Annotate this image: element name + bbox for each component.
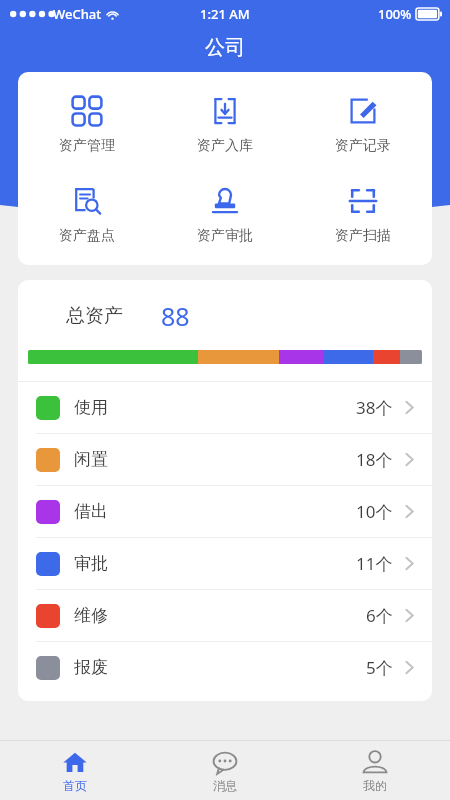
- staticText: 资产记录: [335, 137, 391, 155]
- staticText: 使用: [74, 397, 108, 418]
- button[interactable]: 借出: [18, 486, 432, 537]
- button[interactable]: 审批: [18, 538, 432, 589]
- button[interactable]: 资产审批: [156, 184, 294, 247]
- button[interactable]: 资产入库: [156, 94, 294, 157]
- staticText: 10个: [356, 500, 393, 523]
- staticText: 首页: [63, 778, 87, 793]
- staticText: WeChat: [53, 5, 102, 23]
- staticText: 资产扫描: [335, 227, 391, 245]
- button[interactable]: 我的: [300, 741, 450, 800]
- button[interactable]: 资产记录: [294, 94, 432, 157]
- button[interactable]: 维修: [18, 590, 432, 641]
- button[interactable]: 使用: [18, 382, 432, 433]
- staticText: 18个: [356, 448, 393, 471]
- staticText: 1:21 AM: [200, 5, 250, 23]
- button[interactable]: 资产扫描: [294, 184, 432, 247]
- button[interactable]: 消息: [150, 741, 300, 800]
- staticText: 11个: [356, 552, 393, 575]
- staticText: 38个: [356, 396, 393, 419]
- staticText: 报废: [74, 657, 108, 678]
- staticText: 资产入库: [197, 137, 253, 155]
- staticText: 审批: [74, 553, 108, 574]
- staticText: 88: [161, 299, 190, 333]
- staticText: 借出: [74, 501, 108, 522]
- button[interactable]: 报废: [18, 642, 432, 693]
- staticText: 资产管理: [59, 137, 115, 155]
- staticText: 我的: [363, 778, 387, 793]
- staticText: 资产盘点: [59, 227, 115, 245]
- staticText: 资产审批: [197, 227, 253, 245]
- button[interactable]: 资产盘点: [18, 184, 156, 247]
- staticText: 100%: [378, 5, 412, 23]
- staticText: 5个: [366, 656, 393, 679]
- button[interactable]: 闲置: [18, 434, 432, 485]
- button[interactable]: 首页: [0, 741, 150, 800]
- staticText: 维修: [74, 605, 108, 626]
- staticText: 公司: [205, 35, 245, 60]
- button[interactable]: 资产管理: [18, 94, 156, 157]
- staticText: 6个: [366, 604, 393, 627]
- staticText: 闲置: [74, 449, 108, 470]
- staticText: 消息: [213, 778, 237, 793]
- staticText: 总资产: [66, 304, 123, 328]
